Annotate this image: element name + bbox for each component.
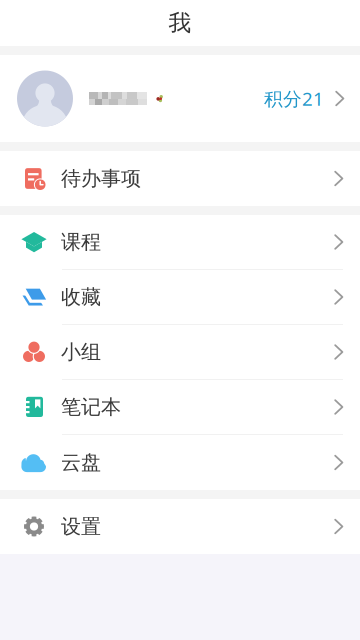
button[interactable]: 课程: [0, 215, 360, 270]
button[interactable]: 待办事项: [0, 151, 360, 206]
button[interactable]: 收藏: [0, 270, 360, 325]
staticText: 云盘: [61, 450, 101, 475]
staticText: 积分21: [264, 86, 324, 111]
staticText: 我: [168, 9, 191, 37]
staticText: 收藏: [61, 285, 101, 309]
button[interactable]: 小组: [0, 325, 360, 380]
staticText: 待办事项: [61, 166, 141, 191]
staticText: 设置: [61, 514, 101, 539]
staticText: 课程: [61, 230, 101, 254]
button[interactable]: 云盘: [0, 435, 360, 490]
button[interactable]: 设置: [0, 499, 360, 554]
button[interactable]: 积分21: [0, 55, 360, 142]
button[interactable]: 笔记本: [0, 380, 360, 435]
staticText: 小组: [61, 340, 101, 364]
staticText: 笔记本: [61, 395, 121, 419]
